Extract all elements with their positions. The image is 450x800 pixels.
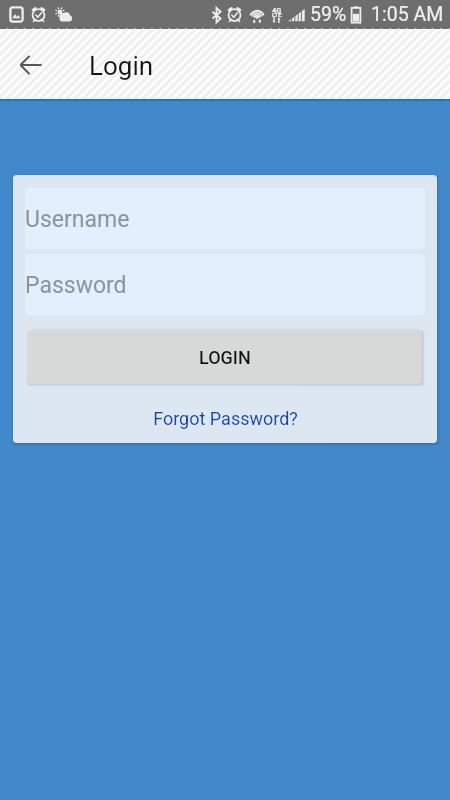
- staticText: Password: [25, 272, 127, 299]
- staticText: Forgot Password?: [153, 408, 298, 429]
- button[interactable]: Back: [7, 40, 55, 88]
- staticText: Login: [89, 51, 154, 81]
- button[interactable]: Forgot Password?: [25, 405, 425, 431]
- button[interactable]: Password: [25, 254, 425, 315]
- staticText: 4G: [272, 6, 282, 15]
- staticText: Username: [25, 206, 130, 233]
- button[interactable]: Username: [25, 188, 425, 249]
- staticText: 59%: [310, 3, 347, 26]
- staticText: LOGIN: [199, 347, 251, 368]
- staticText: LTE: [272, 11, 282, 18]
- button[interactable]: LOGIN: [28, 330, 422, 384]
- staticText: 1:05 AM: [371, 3, 444, 26]
